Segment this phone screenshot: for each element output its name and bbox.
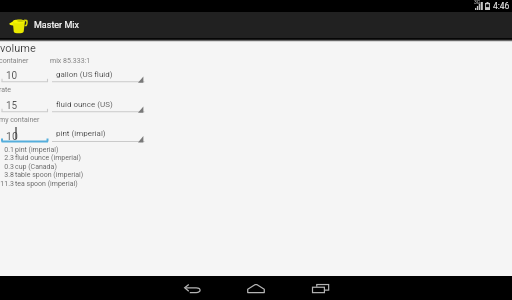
button[interactable]: Amount field — [2, 65, 49, 83]
staticText: 10 — [6, 130, 18, 142]
staticText: 15 — [6, 100, 18, 112]
staticText: 3G — [474, 0, 481, 5]
staticText: volume — [0, 42, 36, 55]
button[interactable]: 2.3 — [0, 154, 110, 163]
staticText: my container — [0, 116, 40, 124]
button[interactable]: Amount field — [2, 125, 49, 143]
button[interactable]: 0.1 — [0, 146, 110, 155]
button[interactable]: Master Mix — [0, 12, 512, 38]
button[interactable]: 3.8 — [0, 171, 110, 180]
staticText: Master Mix — [34, 20, 79, 31]
staticText: tea spoon (imperial) — [15, 180, 78, 188]
button[interactable]: 11.3 — [0, 180, 110, 189]
button[interactable]: Unit selector — [52, 65, 145, 83]
button[interactable]: 0.3 — [0, 163, 110, 172]
staticText: cup (Canada) — [15, 163, 57, 171]
staticText: fluid ounce (US) — [56, 100, 113, 109]
staticText: 3.8 — [4, 171, 14, 179]
staticText: fluid ounce (imperial) — [15, 154, 81, 162]
staticText: rate — [0, 86, 12, 94]
staticText: 2.3 — [4, 154, 14, 162]
button[interactable]: Unit selector — [52, 95, 145, 113]
staticText: mix 85.333:1 — [50, 57, 91, 65]
staticText: 11.3 — [0, 180, 14, 188]
button[interactable]: Unit selector — [52, 125, 145, 143]
button[interactable]: Amount field — [2, 95, 49, 113]
button[interactable]: Back — [160, 276, 224, 300]
staticText: 4:46 — [493, 1, 510, 11]
staticText: pint (imperial) — [56, 129, 106, 138]
button[interactable]: Recent apps — [288, 276, 352, 300]
staticText: 0.1 — [4, 146, 14, 154]
staticText: pint (imperial) — [15, 146, 59, 154]
button[interactable]: Home — [224, 276, 288, 300]
staticText: table spoon (imperial) — [15, 171, 84, 179]
staticText: gallon (US fluid) — [56, 70, 113, 79]
staticText: container — [0, 57, 29, 65]
staticText: 0.3 — [4, 163, 14, 171]
staticText: 10 — [6, 70, 18, 82]
